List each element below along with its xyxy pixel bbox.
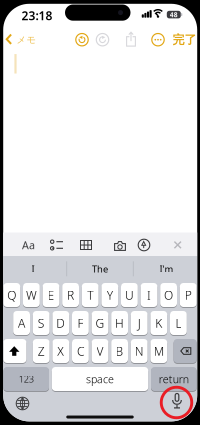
button[interactable]: J [131, 310, 148, 335]
staticText: T [87, 287, 93, 303]
button[interactable]: space [52, 366, 148, 391]
button[interactable]: W [23, 282, 40, 307]
button[interactable]: F [72, 310, 89, 335]
staticText: S [38, 315, 45, 331]
button[interactable]: E [43, 282, 59, 307]
button[interactable]: O [160, 282, 177, 307]
button[interactable]: メモ [2, 29, 42, 51]
button[interactable]: Y [101, 282, 118, 307]
staticText: 23:18 [21, 7, 52, 23]
staticText: I [31, 263, 34, 275]
staticText: Q [7, 287, 16, 303]
button[interactable]: The [70, 259, 130, 279]
staticText: 123 [19, 373, 34, 385]
button[interactable]: R [62, 282, 79, 307]
staticText: L [175, 315, 181, 331]
staticText: Aa [22, 238, 35, 252]
staticText: H [115, 315, 124, 331]
button[interactable] [174, 338, 197, 363]
button[interactable]: T [82, 282, 99, 307]
staticText: F [77, 315, 83, 331]
button[interactable] [15, 396, 29, 410]
button[interactable]: V [92, 338, 108, 363]
staticText: A [18, 315, 25, 331]
button[interactable] [168, 391, 186, 411]
staticText: 48 [170, 10, 178, 19]
staticText: D [56, 315, 65, 331]
staticText: X [57, 343, 64, 359]
button[interactable] [75, 33, 89, 47]
button[interactable]: C [72, 338, 89, 363]
button[interactable] [151, 33, 165, 47]
button[interactable]: H [111, 310, 128, 335]
button[interactable]: K [150, 310, 167, 335]
button[interactable]: S [33, 310, 50, 335]
staticText: I'm [159, 263, 173, 275]
staticText: R [67, 287, 74, 303]
staticText: G [95, 315, 104, 331]
staticText: W [26, 287, 37, 303]
staticText: J [138, 315, 141, 331]
staticText: N [135, 343, 144, 359]
staticText: U [125, 287, 134, 303]
staticText: C [77, 343, 84, 359]
button[interactable]: L [170, 310, 187, 335]
staticText: O [164, 287, 173, 303]
button[interactable]: U [121, 282, 138, 307]
staticText: M [154, 343, 164, 359]
button[interactable]: G [92, 310, 108, 335]
button[interactable] [80, 240, 92, 250]
staticText: I [147, 287, 151, 303]
button[interactable]: M [150, 338, 167, 363]
button[interactable] [126, 32, 136, 47]
button[interactable]: Aa [22, 238, 35, 252]
staticText: B [116, 343, 124, 359]
button[interactable]: Q [3, 282, 20, 307]
staticText: K [155, 315, 162, 331]
button[interactable]: A [13, 310, 30, 335]
button[interactable]: return [151, 366, 197, 391]
staticText: space [86, 372, 114, 386]
button[interactable]: Z [33, 338, 50, 363]
staticText: P [185, 287, 192, 303]
button[interactable]: B [111, 338, 128, 363]
button[interactable]: 完了 [172, 32, 196, 47]
button[interactable]: N [131, 338, 148, 363]
button[interactable]: I'm [136, 259, 196, 279]
button[interactable] [50, 239, 64, 250]
staticText: V [96, 343, 103, 359]
staticText: The [92, 263, 108, 275]
button[interactable]: D [52, 310, 69, 335]
staticText: return [159, 372, 189, 386]
button[interactable]: I [141, 282, 157, 307]
button[interactable]: 123 [3, 366, 49, 391]
button[interactable] [113, 240, 126, 251]
staticText: Z [38, 343, 45, 359]
staticText: Y [107, 287, 113, 303]
button[interactable] [174, 241, 182, 249]
button[interactable]: X [52, 338, 69, 363]
button[interactable] [137, 238, 150, 251]
staticText: メモ [16, 34, 36, 46]
staticText: E [47, 287, 54, 303]
button[interactable] [3, 338, 26, 363]
button[interactable]: I [3, 259, 63, 279]
staticText: 完了 [172, 32, 196, 47]
button[interactable] [95, 33, 109, 47]
button[interactable]: P [180, 282, 197, 307]
